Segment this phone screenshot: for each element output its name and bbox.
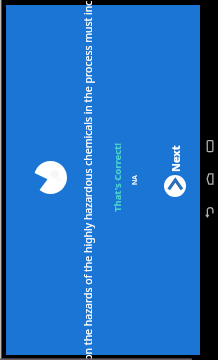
button[interactable]: Back (204, 206, 216, 218)
staticText: That's Correct! (111, 143, 124, 212)
staticText: Next (168, 145, 183, 172)
button[interactable]: Next (164, 145, 186, 197)
staticText: Information on the hazards of the highly… (81, 0, 95, 360)
staticText: NA (130, 175, 140, 185)
button[interactable]: Home (204, 173, 216, 185)
button[interactable]: Recent apps (204, 140, 216, 152)
